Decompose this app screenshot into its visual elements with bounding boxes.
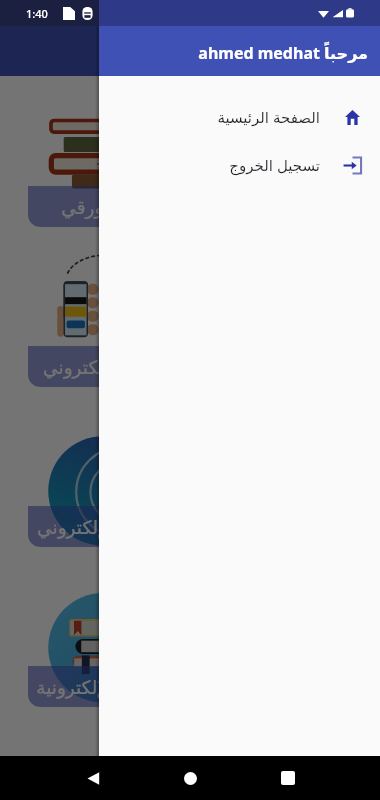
staticText: التوقيع الإلكتروني bbox=[37, 514, 169, 539]
button[interactable]: الدفع الإلكتروني bbox=[28, 253, 178, 387]
button[interactable]: Back bbox=[71, 756, 115, 800]
staticText: مرحباً ahmed medhat bbox=[198, 42, 368, 64]
button[interactable]: Recents bbox=[266, 756, 310, 800]
staticText: المكتبة الإلكترونية bbox=[36, 674, 171, 699]
staticText: كتاب ورقي bbox=[61, 194, 146, 219]
button[interactable]: Home bbox=[168, 756, 212, 800]
button[interactable]: كتاب ورقي bbox=[28, 93, 178, 227]
button[interactable]: الصفحة الرئيسية bbox=[99, 93, 380, 141]
button[interactable]: الدفع الإلكتروني bbox=[202, 93, 352, 227]
button[interactable]: التوقيع الإلكتروني bbox=[28, 413, 178, 547]
button[interactable]: تسجيل الخروج bbox=[99, 141, 380, 189]
staticText: الصفحة الرئيسية bbox=[217, 107, 320, 127]
button[interactable]: المكتبة الإلكترونية bbox=[28, 573, 178, 707]
staticText: تسجيل الخروج bbox=[229, 155, 320, 175]
staticText: الدفع الإلكتروني bbox=[43, 354, 164, 379]
staticText: 1:40 bbox=[26, 6, 48, 21]
